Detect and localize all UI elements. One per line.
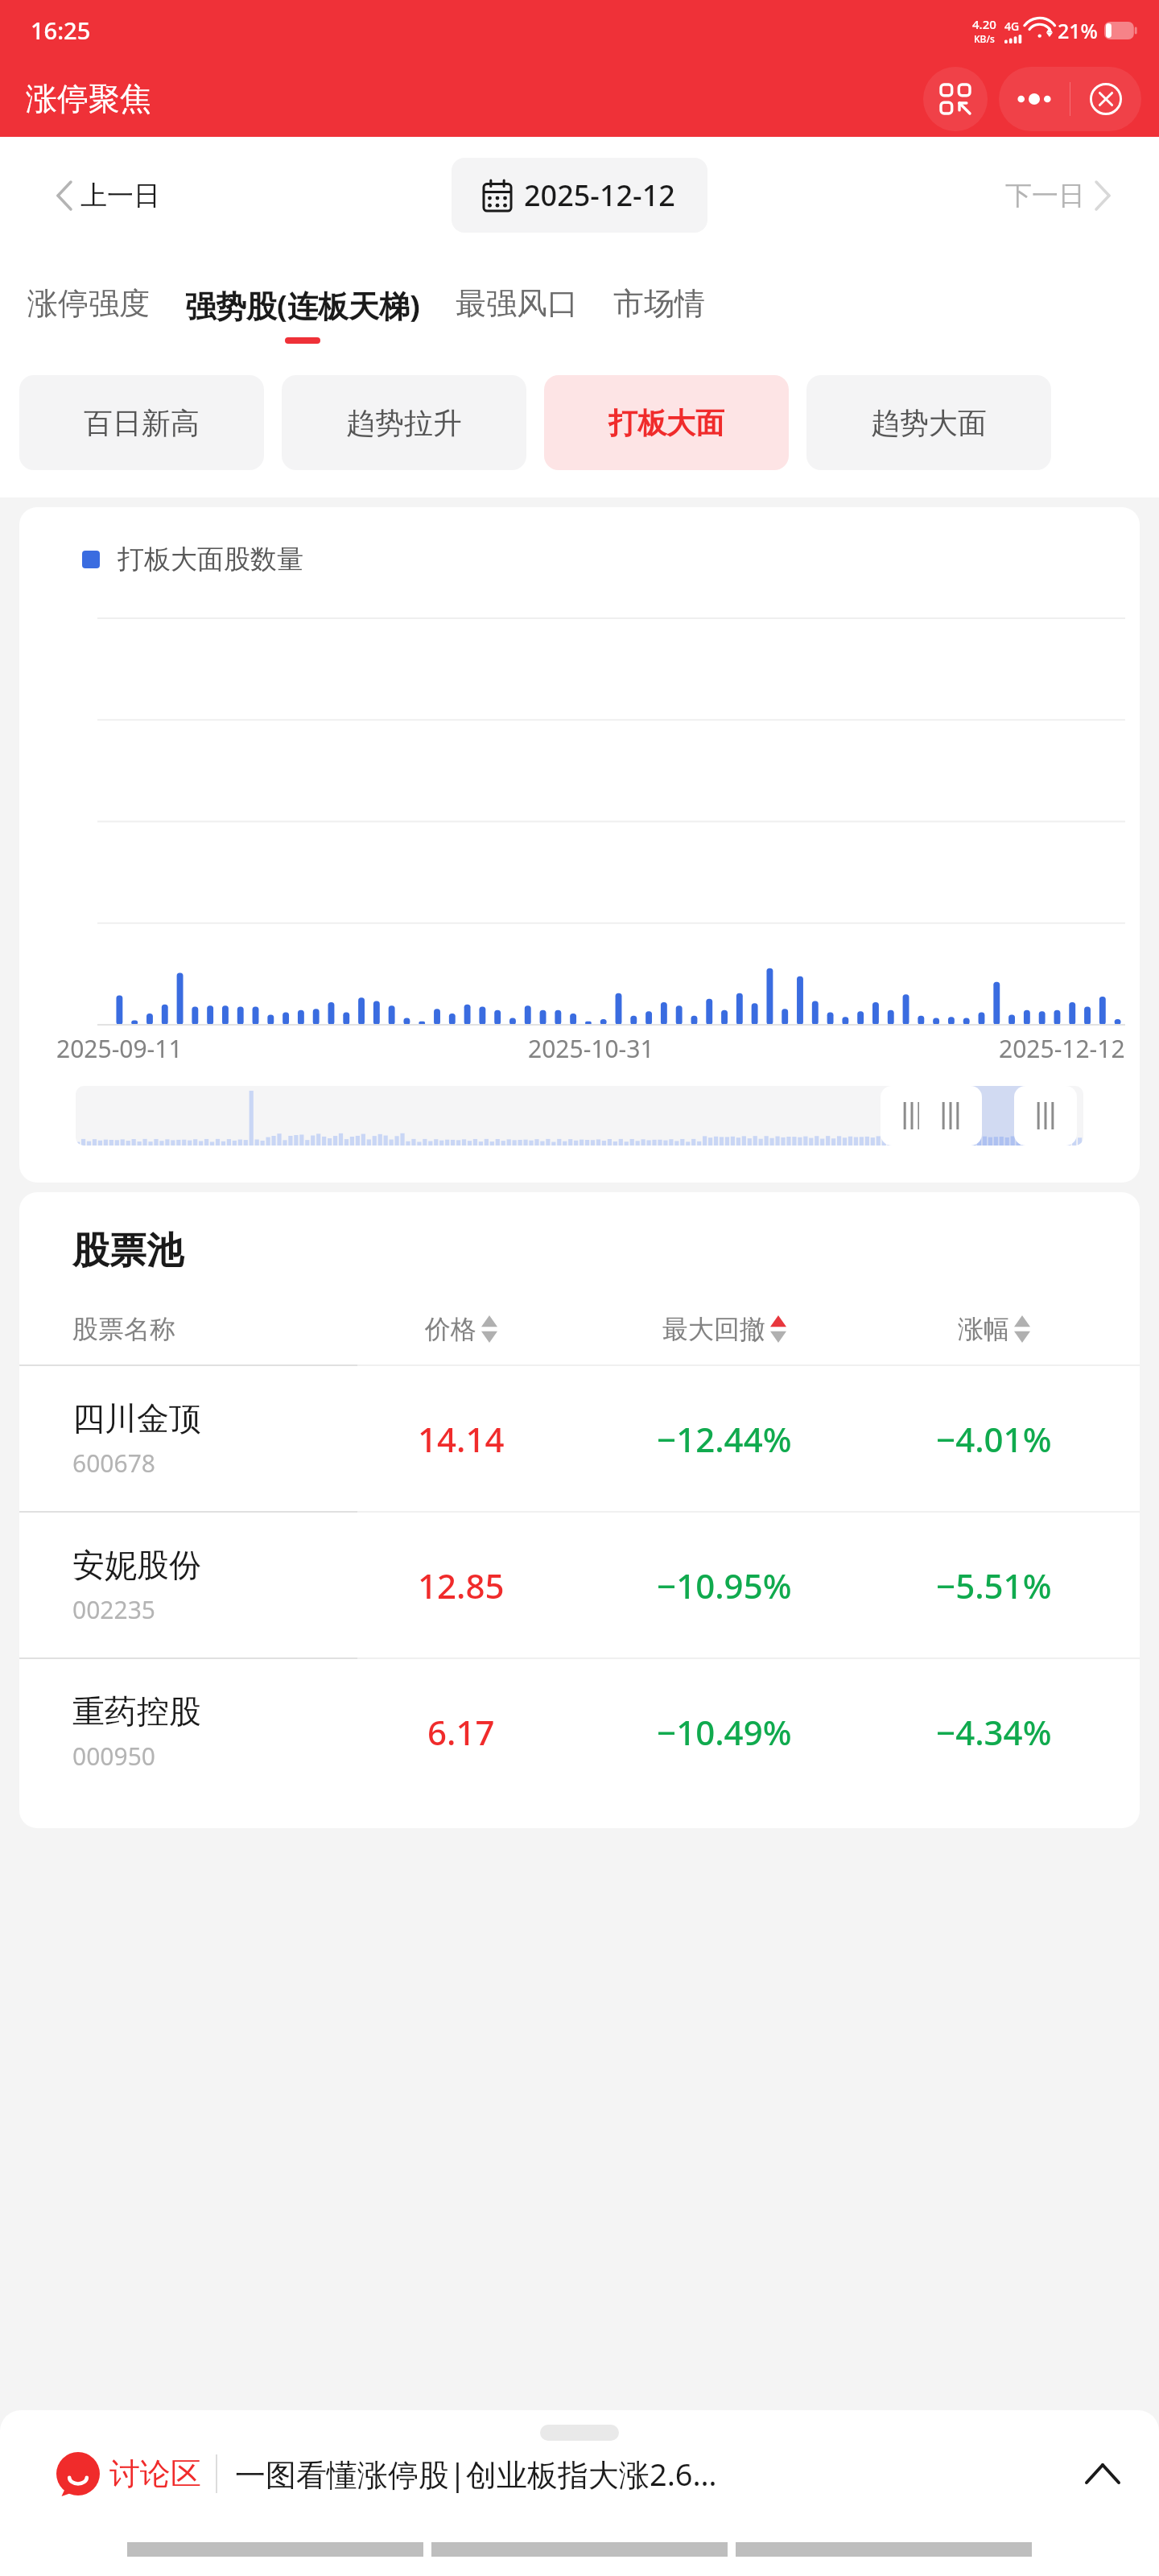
staticText: 000950 bbox=[72, 1740, 155, 1773]
button[interactable]: 涨停强度 bbox=[27, 254, 150, 341]
staticText: 趋势拉升 bbox=[346, 405, 462, 441]
button[interactable]: 百日新高 bbox=[19, 375, 264, 470]
staticText: 4.20 bbox=[972, 16, 996, 32]
staticText: 21% bbox=[1058, 17, 1098, 44]
staticText: −5.51% bbox=[936, 1563, 1052, 1608]
staticText: 14.14 bbox=[418, 1416, 505, 1462]
button[interactable]: Mini programs bbox=[923, 67, 988, 131]
staticText: 4G bbox=[1004, 19, 1020, 34]
staticText: 12.85 bbox=[418, 1563, 505, 1608]
button[interactable]: 市场情 bbox=[613, 254, 705, 341]
button[interactable]: 讨论区 bbox=[0, 2410, 1159, 2523]
staticText: 市场情 bbox=[613, 284, 705, 323]
staticText: 2025-12-12 bbox=[999, 1032, 1125, 1065]
staticText: −10.95% bbox=[657, 1563, 792, 1608]
staticText: 涨幅 bbox=[958, 1313, 1009, 1345]
staticText: 价格 bbox=[425, 1313, 476, 1345]
button[interactable]: 最大回撤 bbox=[573, 1313, 876, 1345]
button[interactable]: 重药控股 bbox=[19, 1659, 1140, 1804]
button[interactable]: 价格 bbox=[349, 1313, 573, 1345]
staticText: 百日新高 bbox=[84, 405, 200, 441]
staticText: 讨论区 bbox=[109, 2454, 201, 2493]
staticText: 涨停强度 bbox=[27, 284, 150, 323]
staticText: 安妮股份 bbox=[72, 1545, 201, 1585]
button[interactable]: More bbox=[999, 67, 1070, 131]
button[interactable]: Close bbox=[1070, 67, 1141, 131]
staticText: 下一日 bbox=[1005, 179, 1085, 213]
staticText: 强势股(连板天梯) bbox=[185, 284, 420, 326]
staticText: 打板大面股数量 bbox=[118, 543, 303, 576]
staticText: 002235 bbox=[72, 1593, 155, 1626]
staticText: −10.49% bbox=[657, 1709, 792, 1755]
button[interactable]: 2025-12-12 bbox=[452, 158, 707, 233]
staticText: 打板大面 bbox=[608, 405, 724, 441]
staticText: −4.34% bbox=[936, 1709, 1052, 1755]
staticText: 重药控股 bbox=[72, 1691, 201, 1732]
staticText: 四川金顶 bbox=[72, 1398, 201, 1439]
staticText: 2025-10-31 bbox=[528, 1032, 654, 1065]
button[interactable]: 四川金顶 bbox=[19, 1366, 1140, 1511]
button[interactable]: 上一日 bbox=[56, 179, 160, 213]
button[interactable]: 最强风口 bbox=[456, 254, 578, 341]
staticText: 趋势大面 bbox=[871, 405, 987, 441]
staticText: −4.01% bbox=[936, 1416, 1052, 1462]
staticText: −12.44% bbox=[657, 1416, 792, 1462]
button[interactable]: 趋势拉升 bbox=[282, 375, 526, 470]
button[interactable]: 趋势大面 bbox=[806, 375, 1051, 470]
button[interactable]: 打板大面 bbox=[544, 375, 789, 470]
staticText: 16:25 bbox=[31, 14, 91, 46]
button[interactable]: 安妮股份 bbox=[19, 1513, 1140, 1657]
staticText: 最强风口 bbox=[456, 284, 578, 323]
staticText: 股票池 bbox=[72, 1228, 184, 1274]
staticText: 股票名称 bbox=[72, 1313, 175, 1345]
button[interactable]: Expand bbox=[1079, 2450, 1127, 2498]
staticText: 2025-12-12 bbox=[524, 175, 675, 215]
staticText: 6.17 bbox=[427, 1709, 495, 1755]
button[interactable]: 下一日 bbox=[1005, 179, 1109, 213]
staticText: 最大回撤 bbox=[662, 1313, 765, 1345]
staticText: 一图看懂涨停股|创业板指大涨2.6… bbox=[235, 2453, 717, 2495]
staticText: KB/s bbox=[974, 32, 995, 45]
button[interactable]: Chart range bbox=[76, 1086, 1083, 1146]
staticText: 涨停聚焦 bbox=[26, 79, 151, 118]
staticText: 600678 bbox=[72, 1447, 155, 1480]
button[interactable]: 涨幅 bbox=[876, 1313, 1112, 1345]
button[interactable]: 强势股(连板天梯) bbox=[185, 254, 420, 344]
staticText: 上一日 bbox=[80, 179, 160, 213]
staticText: 2025-09-11 bbox=[56, 1032, 183, 1065]
